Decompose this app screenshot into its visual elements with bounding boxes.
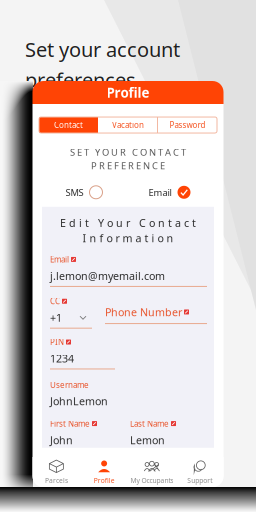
staticText: Username [50,379,89,390]
staticText: Email [50,254,69,265]
button[interactable]: Contact [39,117,98,133]
staticText: SMS [65,186,83,198]
button[interactable]: Profile [80,457,128,487]
staticText: Parcels [45,476,68,485]
staticText: Contact [54,120,83,130]
button[interactable]: My Occupants [128,457,176,487]
staticText: 1234 [50,351,74,365]
staticText: Profile [94,476,115,485]
staticText: +1 [50,310,62,325]
staticText: Email [148,186,171,198]
staticText: Set your account [25,36,180,63]
staticText: Phone Number [105,305,182,319]
staticText: First Name [50,418,90,429]
staticText: JohnLemon [50,394,108,408]
staticText: P R E F E R E N C E [91,159,165,172]
button[interactable]: Password [158,117,217,133]
staticText: Lemon [130,433,165,447]
button[interactable]: Parcels [32,457,80,487]
staticText: Support [187,476,212,485]
staticText: preferences [25,67,136,93]
button[interactable]: Vacation [98,117,158,133]
staticText: I n f o r m a t i o n [82,231,173,245]
staticText: PIN [50,337,64,347]
staticText: CC [50,296,60,306]
button[interactable]: SMS [65,186,102,199]
staticText: E d i t Y o u r C o n t a c t [60,216,196,230]
button[interactable]: Support [176,457,224,487]
button[interactable]: Profile [32,81,223,104]
staticText: Last Name [130,418,169,429]
staticText: S E T Y O U R C O N T A C T [70,146,186,158]
staticText: Password [169,120,205,130]
staticText: Profile [106,84,149,101]
staticText: My Occupants [130,476,173,485]
staticText: John [50,433,73,447]
button[interactable]: Email [148,186,190,199]
staticText: Vacation [112,120,144,130]
staticText: j.lemon@myemail.com [50,269,165,283]
